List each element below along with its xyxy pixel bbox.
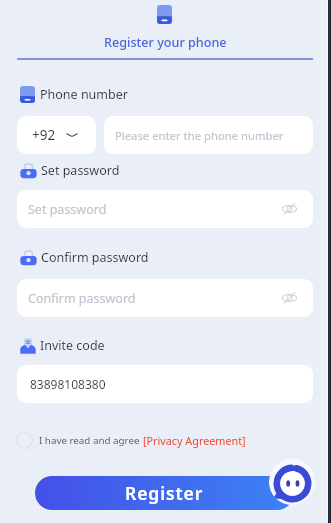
button[interactable]: Customer support chat [269, 459, 315, 505]
staticText: Register [125, 481, 204, 505]
staticText: [Privacy Agreement] [143, 433, 246, 448]
staticText: Please enter the phone number [115, 128, 284, 143]
button[interactable]: Register [35, 476, 294, 510]
staticText: Confirm password [28, 290, 136, 307]
button[interactable]: Show password [282, 203, 297, 215]
staticText: Set password [41, 162, 120, 179]
button[interactable]: Please enter the phone number [104, 116, 313, 154]
button[interactable]: Show password [282, 292, 297, 304]
button[interactable]: Set password [17, 190, 313, 228]
staticText: +92 [32, 126, 56, 144]
staticText: Confirm password [41, 249, 149, 266]
staticText: Register your phone [104, 34, 227, 51]
staticText: 83898108380 [30, 376, 106, 392]
staticText: Set password [28, 201, 107, 218]
button[interactable]: +92 [17, 116, 96, 154]
staticText: Invite code [40, 337, 105, 354]
staticText: Phone number [40, 86, 128, 103]
button[interactable]: I have read and agree [12, 431, 246, 449]
staticText: I have read and agree [39, 434, 143, 447]
button[interactable]: 83898108380 [17, 365, 313, 403]
button[interactable]: Confirm password [17, 279, 313, 317]
